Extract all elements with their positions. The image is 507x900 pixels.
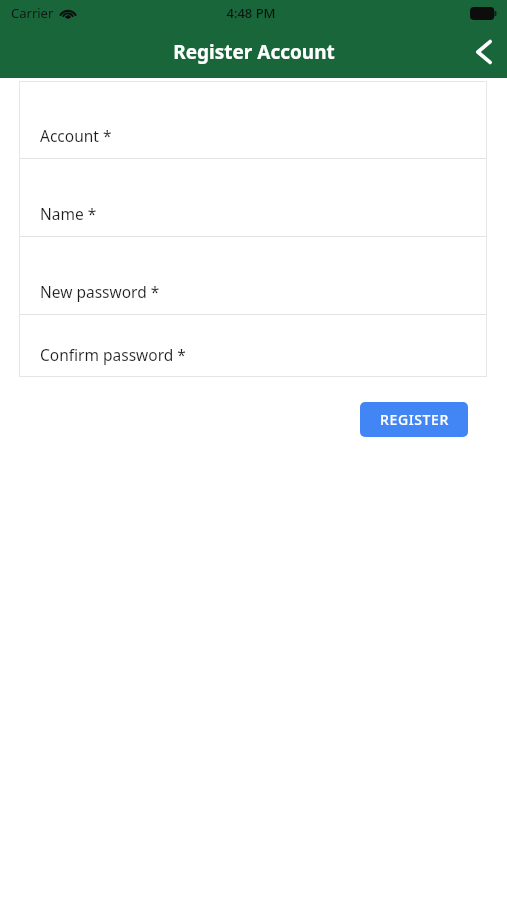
staticText: Account *	[40, 125, 112, 146]
button[interactable]: New password *	[19, 237, 487, 314]
button[interactable]: Back	[461, 29, 507, 75]
staticText: Carrier	[11, 4, 54, 22]
staticText: 4:48 PM	[226, 4, 276, 22]
staticText: REGISTER	[380, 410, 449, 429]
staticText: Name *	[40, 203, 97, 224]
staticText: Confirm password *	[40, 344, 186, 365]
staticText: New password *	[40, 281, 160, 302]
button[interactable]: Confirm password *	[19, 315, 487, 377]
button[interactable]: REGISTER	[360, 402, 468, 437]
button[interactable]: Name *	[19, 159, 487, 236]
button[interactable]: Account *	[19, 81, 487, 158]
staticText: Register Account	[173, 39, 335, 65]
